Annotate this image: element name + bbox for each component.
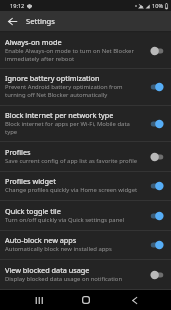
button[interactable]: Ignore battery optimization — [0, 69, 171, 106]
button[interactable]: Toggle — [146, 79, 168, 95]
button[interactable]: Toggle — [146, 149, 168, 165]
button[interactable]: Toggle — [146, 178, 168, 194]
button[interactable]: Toggle — [146, 208, 168, 224]
button[interactable]: Recent apps — [20, 290, 56, 310]
button[interactable]: Home — [68, 290, 104, 310]
button[interactable]: Quick toggle tile — [0, 201, 171, 231]
button[interactable]: Back — [0, 11, 25, 31]
staticText: View blocked data usage — [5, 265, 90, 275]
staticText: Save current config of app list as favor… — [5, 157, 138, 165]
staticText: Display blocked data usage on notificati… — [5, 275, 123, 283]
staticText: Automatically block new installed apps — [5, 245, 112, 253]
button[interactable]: Always-on mode — [0, 33, 171, 69]
button[interactable]: Toggle — [146, 116, 168, 132]
staticText: Profiles — [5, 147, 31, 157]
button[interactable]: Toggle — [146, 267, 168, 283]
staticText: Block internet for apps per Wi-Fi, Mobil… — [5, 120, 139, 136]
staticText: Auto-block new apps — [5, 235, 77, 245]
button[interactable]: Block internet per network type — [0, 106, 171, 142]
button[interactable]: Profiles — [0, 142, 171, 172]
staticText: Enable Always-on mode to turn on Net Blo… — [5, 47, 139, 63]
button[interactable]: Back — [116, 290, 152, 310]
staticText: Quick toggle tile — [5, 206, 61, 216]
staticText: Prevent Android battery optimization fro… — [5, 83, 139, 99]
staticText: Change profiles quickly via Home screen … — [5, 186, 138, 194]
staticText: Block internet per network type — [5, 110, 114, 120]
button[interactable]: Toggle — [146, 237, 168, 253]
button[interactable]: Profiles widget — [0, 172, 171, 201]
button[interactable]: Auto-block new apps — [0, 231, 171, 260]
staticText: Turn on/off quickly via Quick settings p… — [5, 216, 125, 224]
button[interactable]: View blocked data usage — [0, 260, 171, 290]
staticText: Always-on mode — [5, 37, 62, 47]
staticText: Settings — [26, 16, 55, 26]
staticText: Profiles widget — [5, 176, 56, 186]
staticText: Ignore battery optimization — [5, 73, 100, 83]
staticText: 10% — [152, 2, 164, 10]
staticText: 19:12 — [10, 2, 25, 10]
button[interactable]: Toggle — [146, 43, 168, 59]
